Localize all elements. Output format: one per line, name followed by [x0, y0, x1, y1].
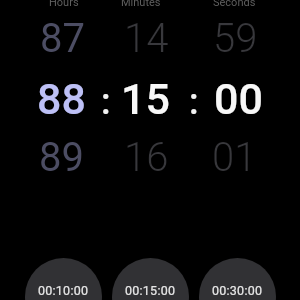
staticText: 16	[124, 134, 169, 181]
staticText: 14	[124, 15, 169, 62]
button[interactable]: 00:10:00	[25, 258, 102, 300]
staticText: :	[101, 81, 111, 123]
button[interactable]: 00:30:00	[199, 258, 276, 300]
staticText: 89	[39, 134, 84, 181]
staticText: 01	[212, 134, 257, 181]
staticText: 00:15:00	[125, 283, 176, 298]
staticText: 59	[213, 15, 258, 62]
staticText: Seconds	[213, 0, 256, 9]
button[interactable]: 88	[0, 67, 131, 131]
staticText: 00:10:00	[38, 283, 89, 298]
button[interactable]: 00:15:00	[112, 258, 189, 300]
staticText: :	[189, 81, 199, 123]
staticText: Minutes	[121, 0, 161, 9]
staticText: 88	[37, 74, 86, 124]
staticText: Hours	[49, 0, 79, 9]
staticText: 00:30:00	[212, 283, 263, 298]
staticText: 87	[40, 15, 85, 62]
staticText: 00	[214, 74, 263, 124]
button[interactable]: 15	[75, 67, 215, 131]
staticText: 15	[121, 74, 170, 124]
button[interactable]: 00	[168, 67, 300, 131]
